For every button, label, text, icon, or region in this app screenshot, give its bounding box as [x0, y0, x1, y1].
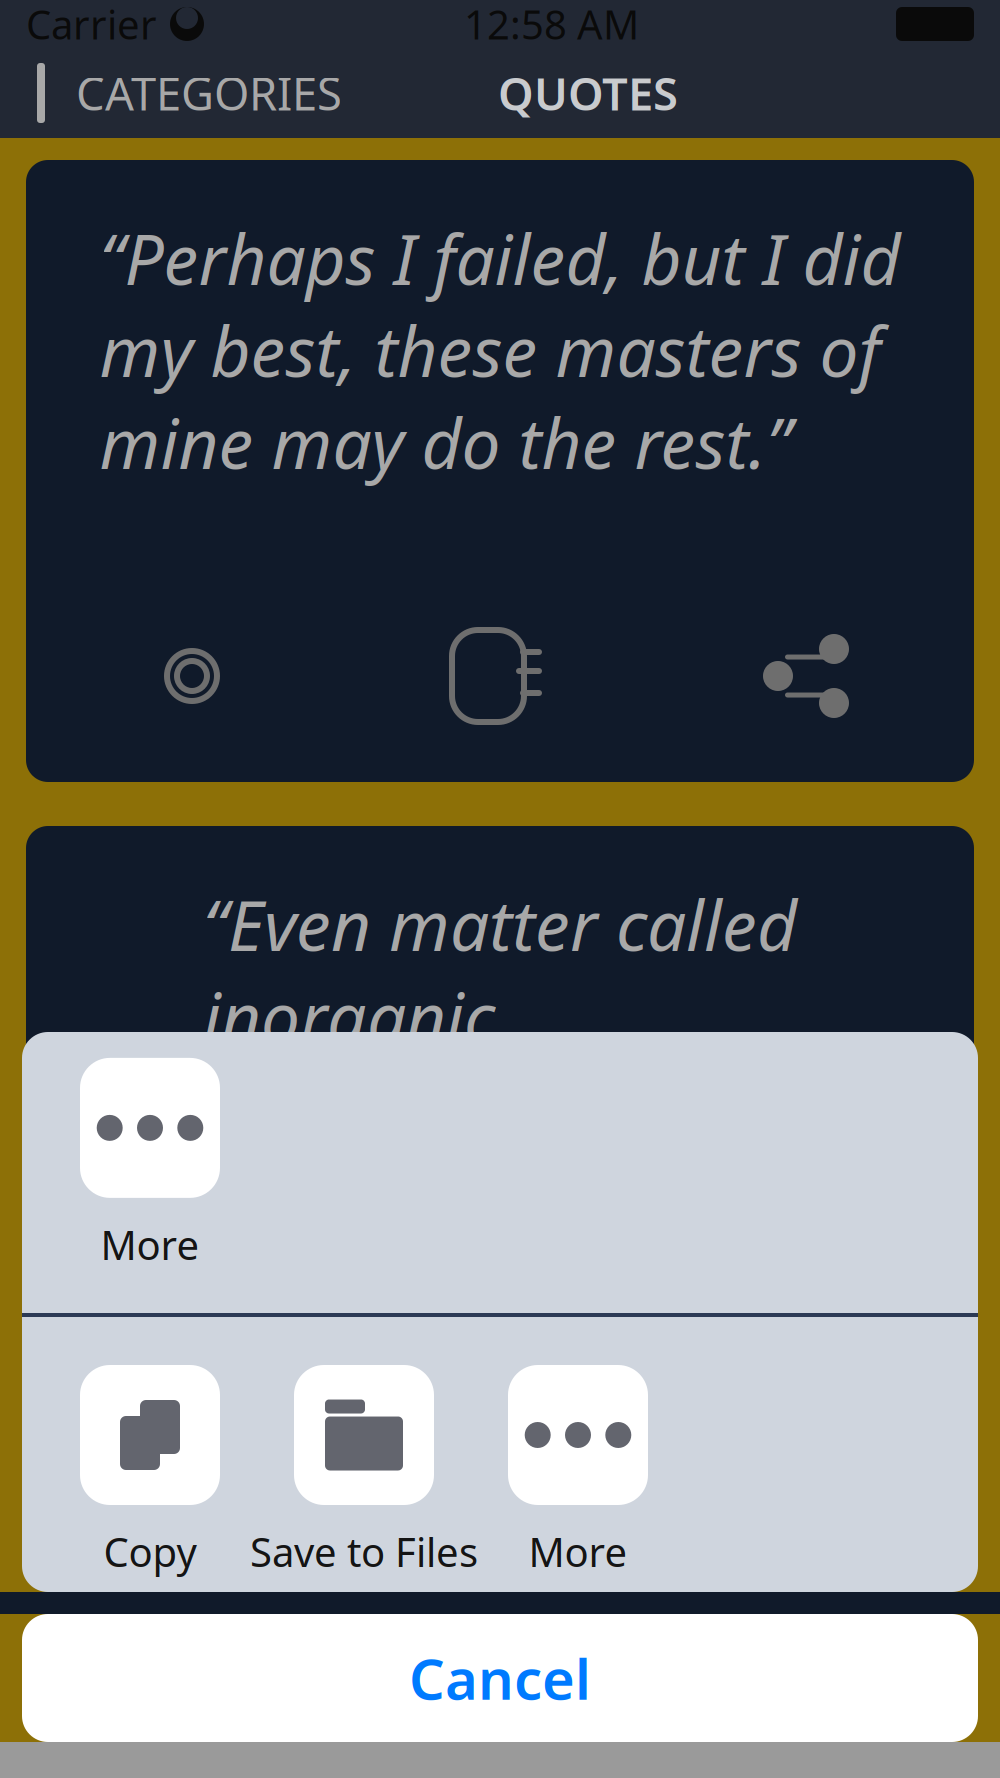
staticText: 12:58 AM — [464, 0, 639, 50]
staticText: More — [100, 1218, 199, 1271]
button[interactable]: View quote — [144, 643, 240, 709]
button[interactable]: Copy — [80, 1365, 220, 1578]
button[interactable]: More — [80, 1058, 220, 1271]
button[interactable]: CATEGORIES — [18, 53, 354, 133]
button[interactable]: More — [508, 1365, 648, 1578]
staticText: More — [528, 1525, 627, 1578]
staticText: Carrier — [26, 0, 157, 50]
staticText: “Perhaps I failed, but I did my best, th… — [99, 212, 900, 488]
staticText: Save to Files — [250, 1525, 478, 1578]
staticText: Cancel — [409, 1641, 591, 1715]
staticText: “Even matter called inorganic — [203, 878, 797, 1062]
button[interactable]: Save to Files — [250, 1365, 478, 1578]
button[interactable]: Cancel — [22, 1614, 978, 1742]
staticText: QUOTES — [498, 63, 678, 123]
staticText: CATEGORIES — [76, 63, 342, 123]
button[interactable]: Speak quote — [443, 626, 553, 726]
staticText: Copy — [103, 1525, 196, 1578]
button[interactable]: Share — [756, 626, 856, 726]
